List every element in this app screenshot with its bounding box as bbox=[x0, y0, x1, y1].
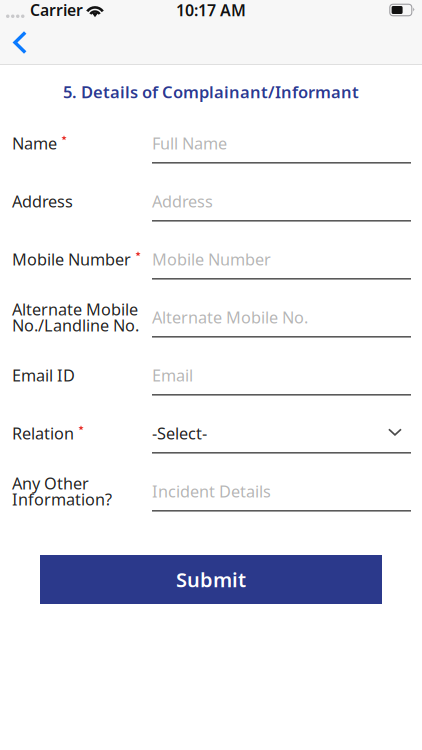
staticText: Full Name bbox=[152, 132, 227, 154]
staticText: Carrier bbox=[30, 0, 83, 21]
button[interactable]: Back bbox=[0, 20, 45, 65]
staticText: Alternate Mobile No./Landline No. bbox=[12, 298, 139, 336]
staticText: Alternate Mobile No. bbox=[152, 306, 308, 328]
staticText: 5. Details of Complainant/Informant bbox=[63, 80, 359, 103]
staticText: Email ID bbox=[12, 364, 75, 386]
staticText: Address bbox=[12, 190, 73, 212]
staticText: Address bbox=[152, 190, 213, 212]
staticText: Name bbox=[12, 132, 57, 154]
staticText: Relation bbox=[12, 422, 74, 444]
staticText: Mobile Number bbox=[152, 248, 271, 270]
staticText: Incident Details bbox=[152, 480, 271, 502]
staticText: Submit bbox=[176, 566, 246, 593]
staticText: Mobile Number bbox=[12, 248, 131, 270]
staticText: Email bbox=[152, 364, 193, 386]
staticText: -Select- bbox=[152, 422, 207, 444]
staticText: Any Other Information? bbox=[12, 472, 112, 510]
staticText: 10:17 AM bbox=[176, 0, 246, 21]
button[interactable]: Submit bbox=[40, 555, 382, 604]
